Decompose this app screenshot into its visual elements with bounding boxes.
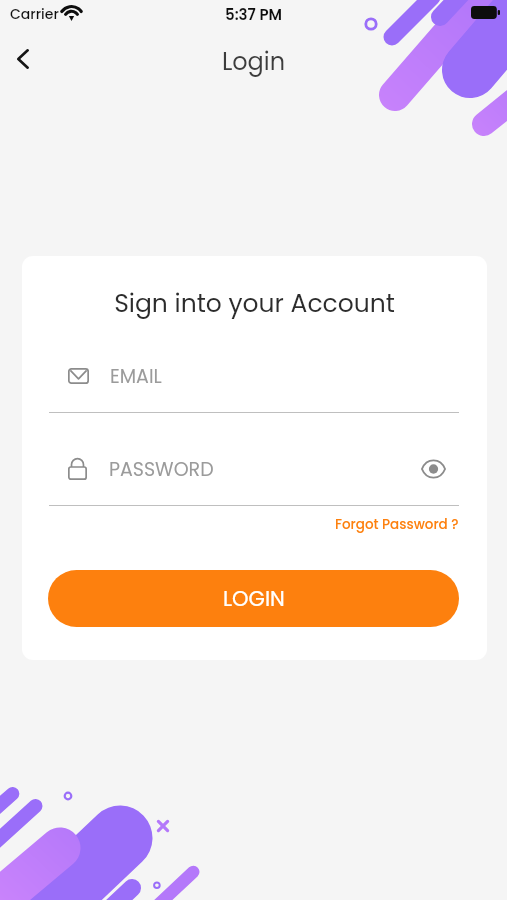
button[interactable]: Back bbox=[0, 36, 46, 82]
staticText: Carrier bbox=[10, 4, 59, 24]
staticText: PASSWORD bbox=[109, 456, 214, 483]
button[interactable]: PASSWORD bbox=[48, 449, 460, 489]
staticText: 5:37 PM bbox=[0, 4, 507, 25]
staticText: EMAIL bbox=[110, 363, 162, 390]
staticText: LOGIN bbox=[223, 584, 285, 613]
button[interactable]: LOGIN bbox=[48, 570, 459, 627]
button[interactable]: Forgot Password ? bbox=[322, 512, 459, 536]
staticText: Forgot Password ? bbox=[335, 515, 459, 534]
staticText: Login bbox=[0, 45, 507, 79]
staticText: Sign into your Account bbox=[22, 286, 487, 321]
button[interactable]: EMAIL bbox=[48, 356, 460, 396]
button[interactable]: Show password bbox=[416, 452, 450, 486]
